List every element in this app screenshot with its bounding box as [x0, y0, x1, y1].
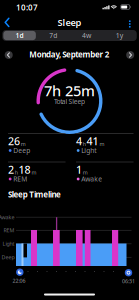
staticText: Deep — [13, 146, 30, 155]
staticText: Total Sleep — [54, 97, 85, 106]
staticText: 7h 25m — [44, 81, 95, 100]
staticText: Monday, September 2 — [29, 49, 110, 60]
staticText: 10:07 — [16, 2, 38, 13]
button[interactable]: 1d — [4, 30, 36, 41]
staticText: 06:31 — [122, 278, 135, 285]
staticText: h — [83, 140, 86, 147]
staticText: m — [83, 169, 88, 176]
staticText: 22:06 — [12, 277, 25, 284]
staticText: m — [21, 140, 26, 147]
staticText: Sleep — [57, 16, 81, 29]
staticText: 18 — [19, 162, 31, 177]
button[interactable]: 7d — [37, 30, 69, 41]
staticText: Light — [81, 146, 96, 155]
button[interactable]: Next day — [126, 51, 134, 59]
staticText: 4w — [82, 31, 91, 40]
staticText: 26 — [8, 134, 20, 148]
staticText: 1y — [116, 31, 124, 40]
button[interactable]: 1y — [104, 30, 136, 41]
staticText: m — [99, 140, 104, 147]
button[interactable]: More — [125, 18, 135, 30]
staticText: REM — [3, 227, 14, 234]
staticText: 7d — [49, 31, 57, 40]
staticText: Light — [2, 240, 14, 247]
staticText: 1 — [76, 162, 82, 177]
staticText: h — [15, 169, 18, 176]
staticText: Awake — [0, 214, 14, 221]
staticText: m — [31, 169, 36, 176]
staticText: Awake — [81, 175, 102, 183]
staticText: REM — [13, 175, 27, 183]
button[interactable]: 4w — [70, 30, 102, 41]
staticText: 4 — [76, 134, 82, 148]
staticText: 1d — [16, 31, 24, 40]
button[interactable]: Previous day — [5, 51, 13, 59]
button[interactable]: Back — [1, 16, 13, 28]
staticText: 2 — [8, 162, 14, 177]
staticText: Sleep Timeline — [8, 189, 61, 200]
staticText: 41 — [87, 134, 99, 148]
staticText: Deep — [1, 254, 14, 261]
